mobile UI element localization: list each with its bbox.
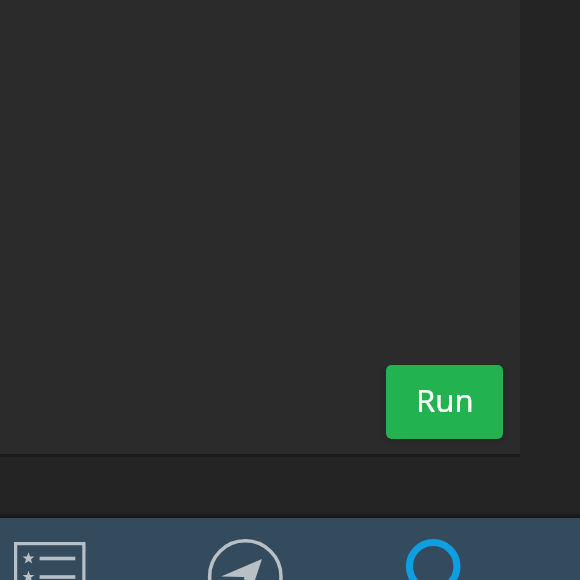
button[interactable]: Explore [190, 518, 300, 580]
button[interactable]: Run [386, 365, 503, 439]
button[interactable]: Record [390, 518, 480, 580]
button[interactable]: Favourites list [0, 518, 100, 580]
staticText: Run [416, 379, 474, 421]
